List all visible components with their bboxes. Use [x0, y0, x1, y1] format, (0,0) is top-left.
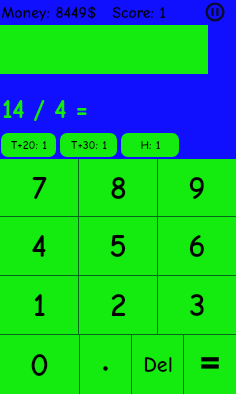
staticText: 5 — [109, 227, 127, 265]
button[interactable]: 0 — [0, 335, 79, 394]
staticText: 14 / 4 = — [2, 95, 88, 125]
button[interactable]: 1 — [0, 276, 78, 334]
staticText: 1 — [33, 286, 46, 324]
button[interactable]: 5 — [79, 217, 157, 275]
button[interactable]: 6 — [158, 217, 236, 275]
button[interactable]: 4 — [0, 217, 78, 275]
staticText: 8 — [110, 169, 127, 207]
button[interactable]: Del — [132, 335, 183, 394]
button[interactable]: 2 — [79, 276, 157, 334]
staticText: 2 — [110, 286, 127, 324]
staticText: Money: 8449$ — [1, 4, 97, 22]
staticText: Score: 1 — [112, 4, 166, 22]
staticText: Del — [143, 352, 173, 377]
button[interactable]: Decimal point — [80, 335, 131, 394]
staticText: 6 — [188, 227, 206, 265]
button[interactable]: H: 1 — [121, 133, 179, 157]
staticText: H: 1 — [140, 138, 161, 152]
button[interactable]: 3 — [158, 276, 236, 334]
button[interactable]: Equals — [184, 335, 236, 394]
button[interactable]: T+30: 1 — [60, 133, 117, 157]
staticText: 3 — [189, 286, 206, 324]
staticText: T+30: 1 — [71, 138, 107, 152]
button[interactable]: T+20: 1 — [1, 133, 56, 157]
staticText: 9 — [188, 169, 206, 207]
staticText: 7 — [32, 169, 47, 207]
button[interactable]: Pause — [206, 3, 224, 21]
staticText: T+20: 1 — [11, 138, 47, 152]
button[interactable]: 7 — [0, 159, 78, 216]
staticText: 4 — [31, 227, 47, 265]
button[interactable]: 9 — [158, 159, 236, 216]
button[interactable]: 8 — [79, 159, 157, 216]
staticText: 0 — [30, 346, 49, 384]
